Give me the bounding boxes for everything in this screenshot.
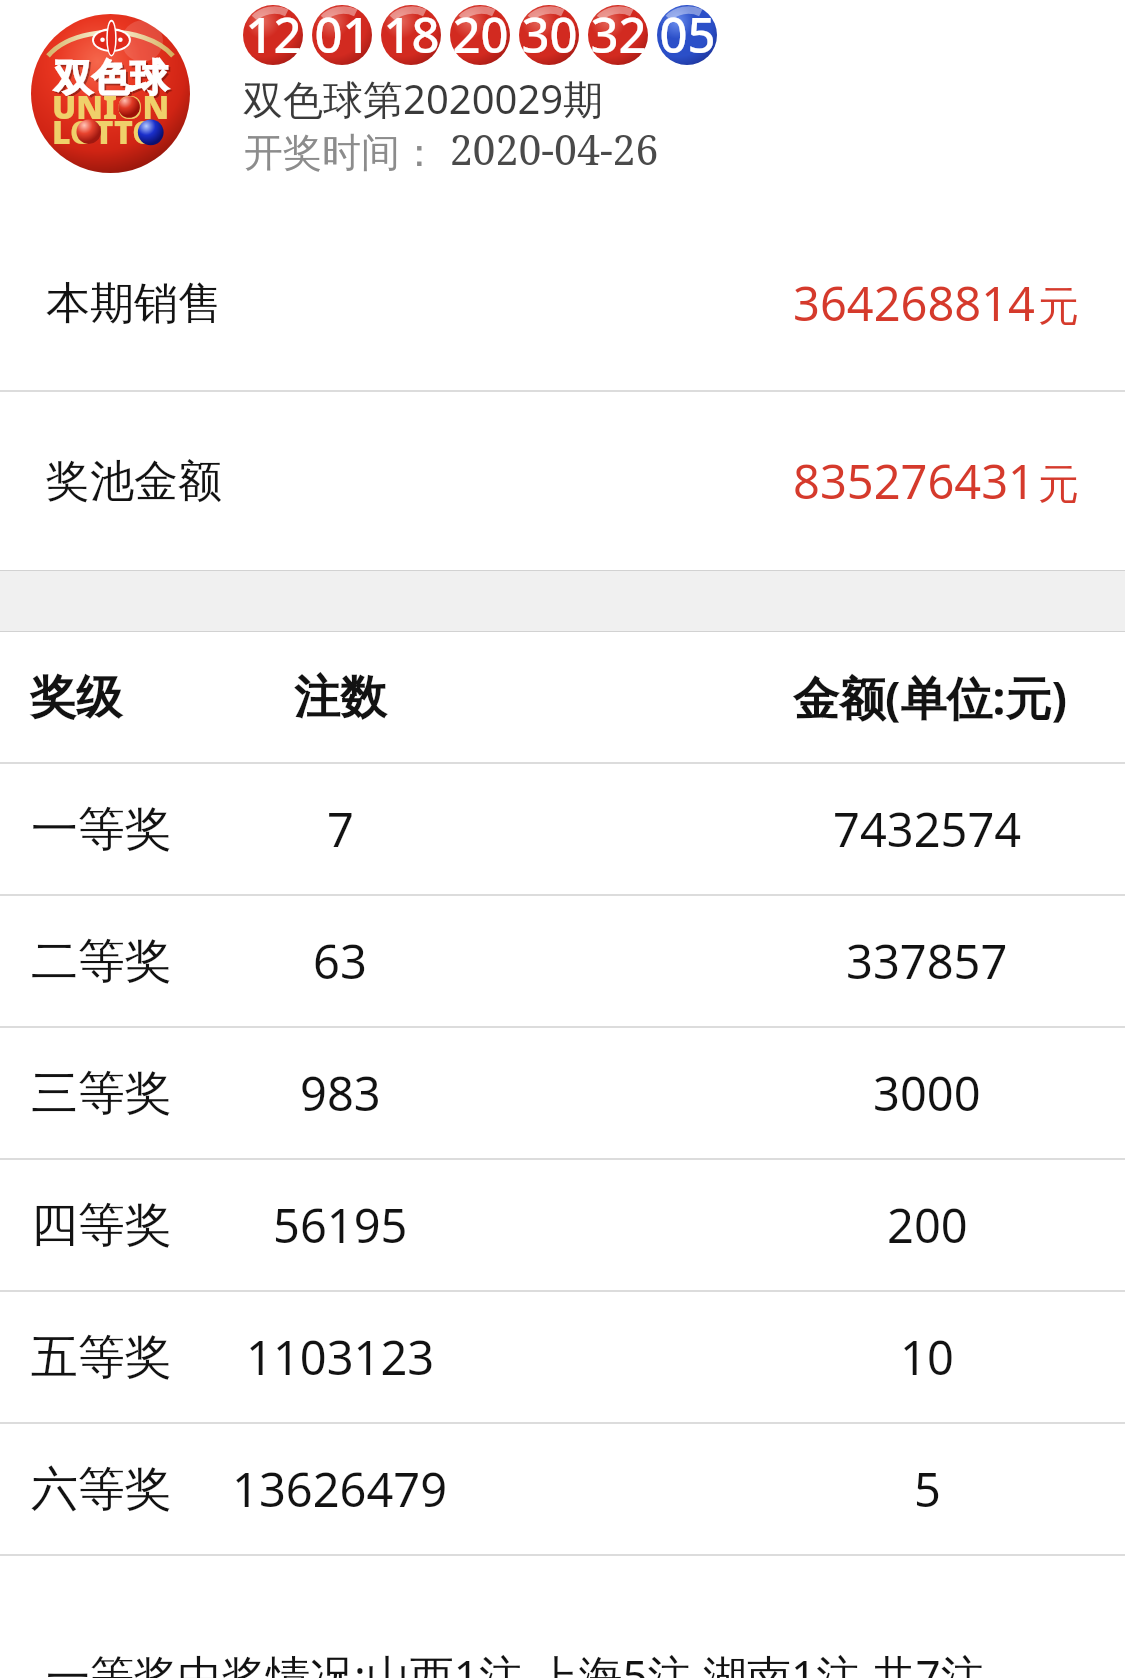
staticText: UNION [52,85,170,129]
staticText: 63 [313,929,367,993]
staticText: 四等奖 [31,1196,172,1255]
staticText: 三等奖 [31,1064,172,1123]
staticText: 一等奖 [31,800,172,859]
staticText: 18 [383,1,440,61]
staticText: 金额(单位:元) [793,666,1068,729]
staticText: 开奖时间： [244,128,439,177]
staticText: 7 [327,797,354,861]
staticText: 3000 [873,1061,981,1125]
staticText: 奖池金额 [46,454,222,509]
button[interactable]: 一等奖中奖情况:山西1注 上海5注 湖南1注 共7注 [0,1620,1125,1678]
button[interactable]: 六等奖 [0,1423,1125,1555]
staticText: 本期销售 [46,276,222,331]
staticText: 364268814 [793,271,1035,335]
staticText: LOTTO [52,110,158,154]
staticText: 983 [300,1061,381,1125]
staticText: 10 [900,1325,954,1389]
button[interactable]: 五等奖 [0,1291,1125,1423]
staticText: 56195 [273,1193,408,1257]
button[interactable]: 二等奖 [0,895,1125,1027]
button[interactable]: 四等奖 [0,1159,1125,1291]
staticText: 双色球 [54,54,168,102]
staticText: 01 [314,1,371,61]
staticText: 五等奖 [31,1328,172,1387]
staticText: 337857 [846,929,1008,993]
staticText: 7432574 [833,797,1022,861]
button[interactable]: Winning numbers 12 01 18 20 30 32 05 [243,5,717,65]
staticText: 元 [1038,459,1079,511]
staticText: 1103123 [246,1325,435,1389]
staticText: 双色球第2020029期 [243,71,604,121]
staticText: 5 [914,1457,941,1521]
staticText: 13626479 [232,1457,448,1521]
button[interactable]: 双色球第2020029期 [237,66,657,116]
button[interactable]: 一等奖 [0,763,1125,895]
staticText: 835276431 [793,449,1035,513]
button[interactable]: 本期销售 [0,215,1125,391]
staticText: 注数 [294,669,386,727]
staticText: 奖级 [30,669,122,727]
staticText: 20 [452,1,509,61]
staticText: 200 [887,1193,968,1257]
button[interactable]: 双色球 Union Lotto logo [31,14,190,173]
staticText: 05 [659,1,716,61]
button[interactable]: 三等奖 [0,1027,1125,1159]
staticText: 一等奖中奖情况:山西1注 上海5注 湖南1注 共7注 [46,1645,985,1678]
staticText: 2020-04-26 [439,121,659,177]
staticText: 32 [590,1,647,61]
staticText: 12 [245,1,302,61]
staticText: 30 [521,1,578,61]
staticText: 二等奖 [31,932,172,991]
staticText: 元 [1038,281,1079,333]
staticText: 双色球 [56,56,170,104]
button[interactable]: 奖池金额 [0,391,1125,571]
staticText: 六等奖 [31,1460,172,1519]
